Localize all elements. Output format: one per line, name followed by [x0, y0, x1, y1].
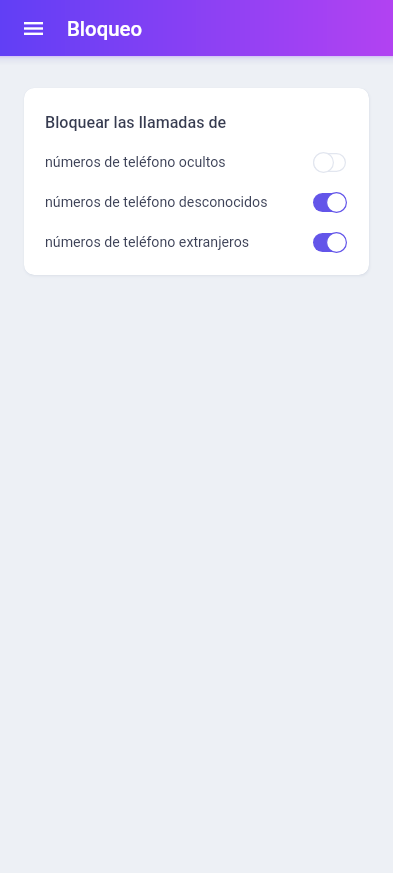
- button[interactable]: números de teléfono desconocidos: [24, 182, 369, 222]
- staticText: Bloqueo: [67, 17, 143, 41]
- button[interactable]: números de teléfono extranjeros: [24, 222, 369, 262]
- staticText: números de teléfono ocultos: [45, 154, 313, 171]
- button[interactable]: números de teléfono ocultos: [24, 142, 369, 182]
- staticText: números de teléfono desconocidos: [45, 194, 313, 211]
- staticText: números de teléfono extranjeros: [45, 234, 313, 251]
- button[interactable]: Menu: [9, 4, 57, 52]
- staticText: Bloquear las llamadas de: [45, 113, 227, 132]
